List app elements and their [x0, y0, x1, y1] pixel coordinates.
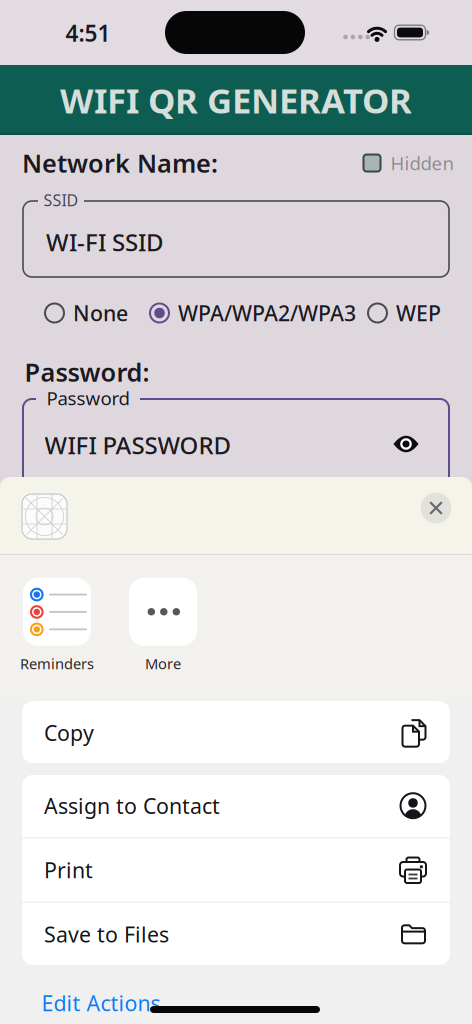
button[interactable]: Assign to Contact: [22, 774, 450, 837]
staticText: Password: [46, 386, 129, 410]
staticText: SSID: [43, 189, 78, 211]
staticText: Network Name:: [22, 146, 218, 180]
staticText: Edit Actions...: [41, 989, 178, 1017]
staticText: Assign to Contact: [44, 791, 220, 820]
button[interactable]: Edit Actions...: [41, 989, 178, 1017]
button[interactable]: Reminders: [20, 578, 94, 673]
staticText: Copy: [44, 718, 94, 747]
staticText: Print: [44, 856, 93, 884]
button[interactable]: Hidden: [363, 151, 454, 175]
staticText: Reminders: [20, 654, 94, 673]
button[interactable]: WEP: [368, 299, 441, 327]
staticText: Save to Files: [44, 920, 169, 948]
staticText: Password:: [24, 355, 149, 389]
button[interactable]: Copy: [22, 701, 450, 764]
staticText: WPA/WPA2/WPA3: [178, 299, 356, 327]
staticText: More: [145, 654, 181, 673]
button[interactable]: Save to Files: [22, 903, 450, 966]
button[interactable]: None: [45, 299, 128, 327]
staticText: WIFI PASSWORD: [44, 429, 231, 461]
button[interactable]: More: [129, 578, 197, 673]
staticText: WI-FI SSID: [46, 226, 164, 258]
staticText: Hidden: [390, 151, 454, 175]
staticText: WIFI QR GENERATOR: [60, 77, 412, 123]
staticText: WEP: [396, 299, 441, 327]
button[interactable]: WPA/WPA2/WPA3: [150, 299, 356, 327]
button[interactable]: Show password: [393, 435, 418, 453]
button[interactable]: Close: [420, 492, 451, 523]
button[interactable]: Print: [22, 838, 450, 902]
staticText: 4:51: [65, 18, 110, 48]
staticText: None: [73, 299, 128, 327]
